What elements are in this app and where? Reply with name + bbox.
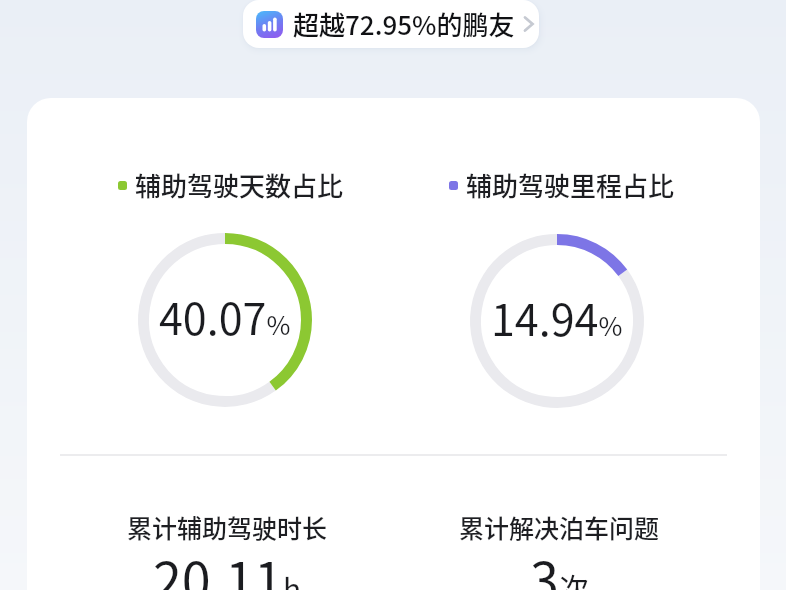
staticText: 20.11h: [153, 540, 302, 590]
staticText: 辅助驾驶里程占比: [466, 166, 675, 204]
button[interactable]: 超越72.95%的鹏友: [243, 0, 539, 48]
staticText: 辅助驾驶天数占比: [135, 166, 344, 204]
staticText: 40.07%: [159, 285, 291, 347]
staticText: 3次: [530, 540, 589, 590]
staticText: 14.94%: [491, 286, 623, 348]
staticText: 累计解决泊车问题: [459, 509, 660, 545]
staticText: 超越72.95%的鹏友: [293, 5, 515, 43]
staticText: 累计辅助驾驶时长: [127, 509, 328, 545]
